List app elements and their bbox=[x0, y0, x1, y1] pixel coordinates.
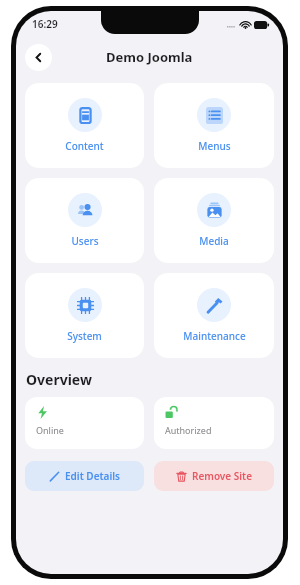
button[interactable]: Back bbox=[25, 44, 52, 71]
staticText: Authorized bbox=[165, 424, 212, 436]
staticText: Maintenance bbox=[183, 329, 246, 343]
staticText: Edit Details bbox=[65, 469, 120, 483]
staticText: Overview bbox=[26, 370, 92, 389]
button[interactable]: Users bbox=[25, 178, 144, 263]
staticText: Media bbox=[199, 234, 229, 248]
staticText: Content bbox=[65, 139, 104, 153]
button[interactable]: System bbox=[25, 273, 144, 358]
button[interactable]: Media bbox=[154, 178, 274, 263]
button[interactable]: Menus bbox=[154, 83, 274, 168]
button[interactable]: Content bbox=[25, 83, 144, 168]
button[interactable]: Edit Details bbox=[25, 461, 144, 491]
staticText: Menus bbox=[198, 139, 231, 153]
staticText: Users bbox=[71, 234, 99, 248]
staticText: Online bbox=[36, 424, 64, 436]
button[interactable]: Remove Site bbox=[154, 461, 274, 491]
staticText: Demo Joomla bbox=[106, 48, 193, 66]
button[interactable]: Online bbox=[25, 397, 144, 449]
staticText: System bbox=[67, 329, 102, 343]
staticText: Remove Site bbox=[192, 469, 253, 483]
button[interactable]: Authorized bbox=[154, 397, 274, 449]
button[interactable]: Maintenance bbox=[154, 273, 274, 358]
staticText: 16:29 bbox=[32, 17, 58, 31]
